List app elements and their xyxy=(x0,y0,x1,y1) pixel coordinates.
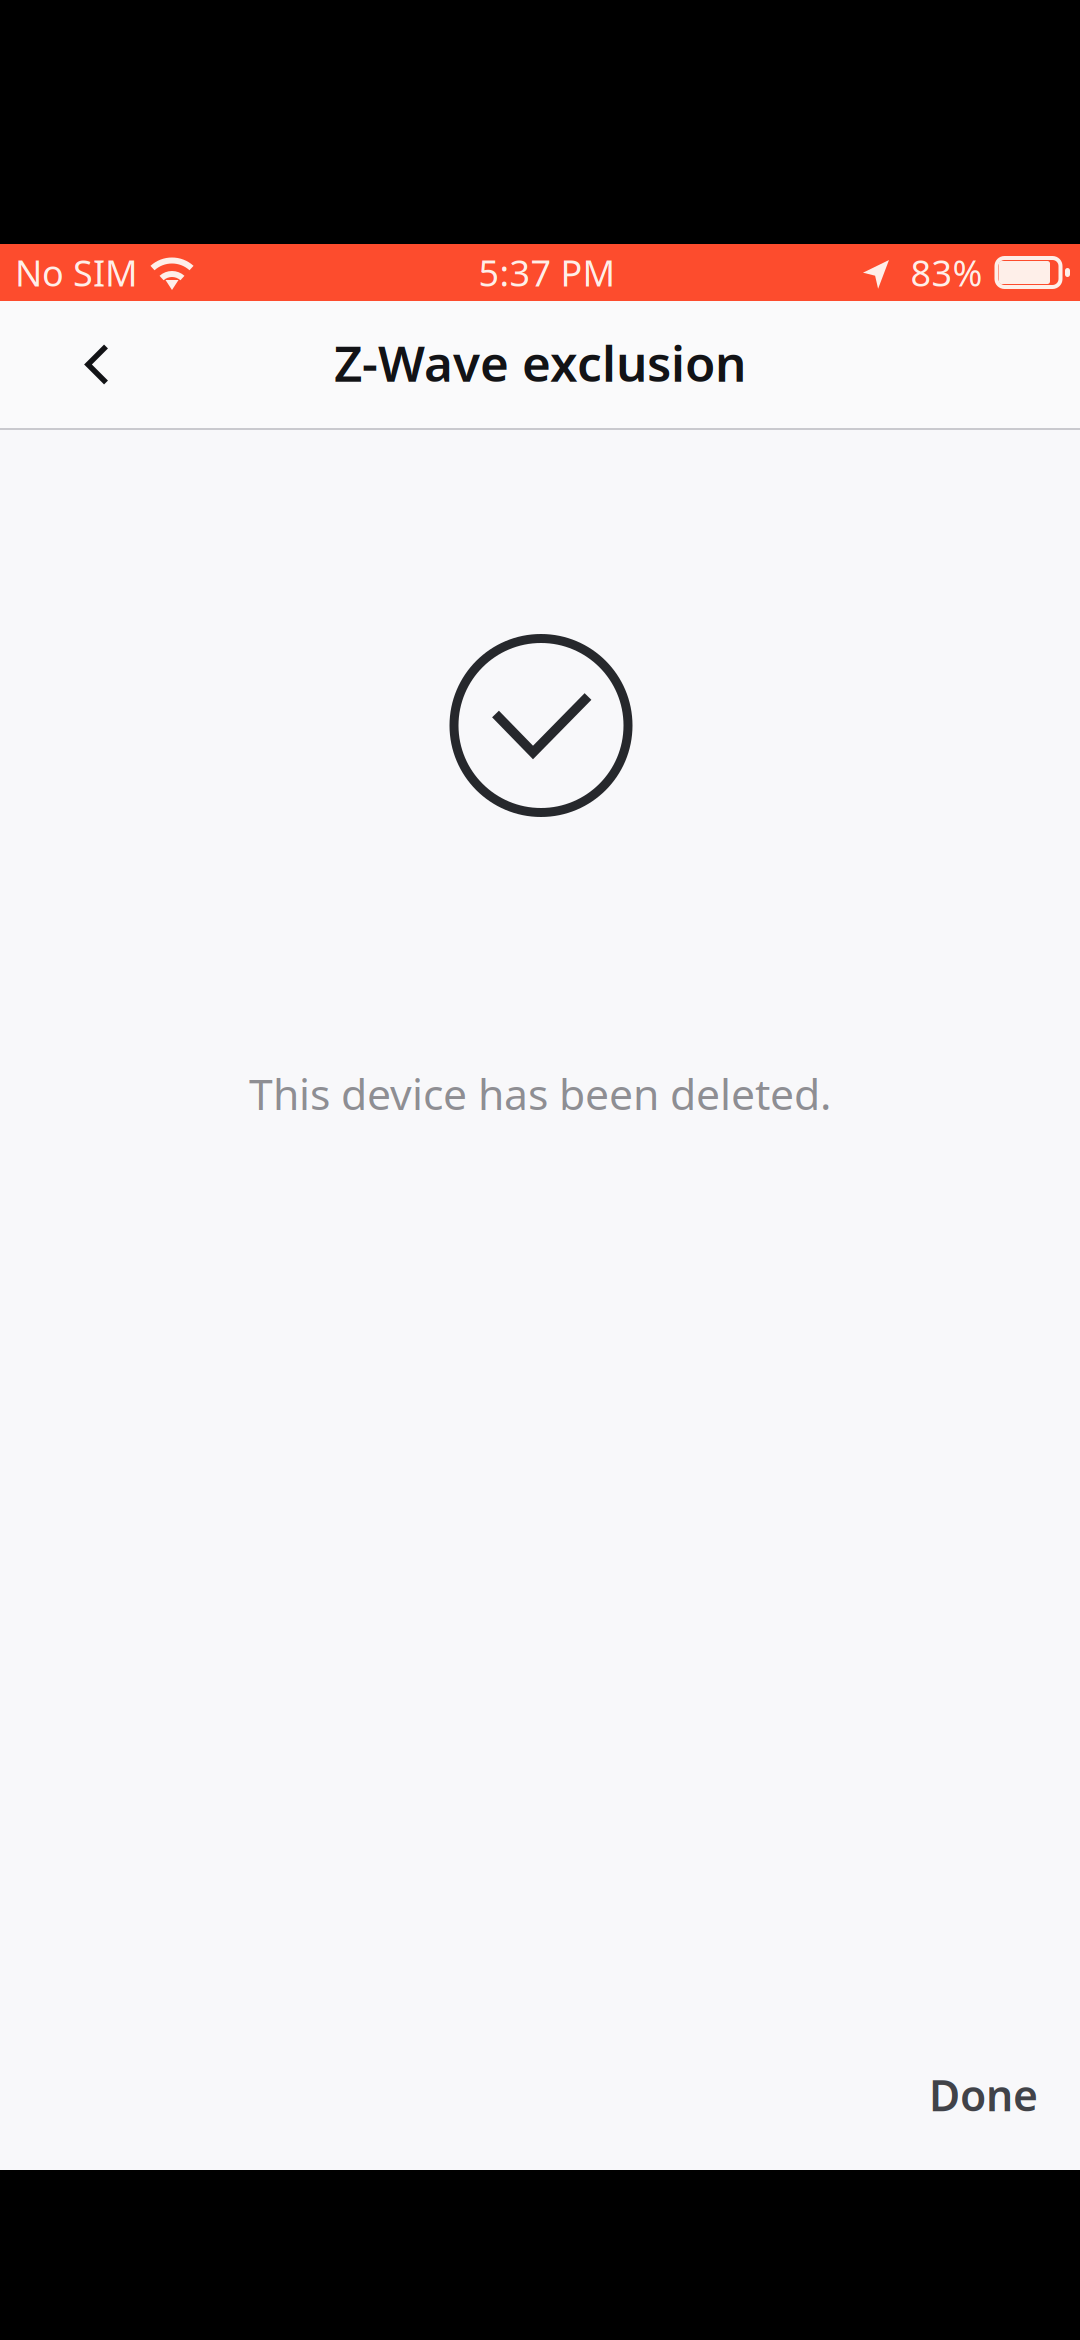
staticText: 83% xyxy=(910,249,982,296)
staticText: 5:37 PM xyxy=(478,249,615,296)
button[interactable]: Back xyxy=(0,301,196,430)
staticText: Done xyxy=(929,2066,1038,2123)
button[interactable]: Done xyxy=(903,2042,1064,2147)
staticText: No SIM xyxy=(15,249,138,296)
staticText: This device has been deleted. xyxy=(249,1065,831,1122)
staticText: Z-Wave exclusion xyxy=(334,330,746,395)
